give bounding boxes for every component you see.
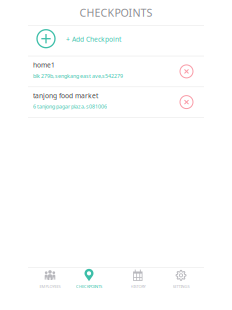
button[interactable]: EMPLOYEES bbox=[28, 268, 72, 290]
staticText: SETTINGS bbox=[172, 284, 189, 289]
staticText: home1 bbox=[33, 60, 55, 69]
staticText: EMPLOYEES bbox=[39, 284, 60, 289]
button[interactable]: home1 bbox=[28, 56, 204, 86]
staticText: tanjong food market bbox=[33, 91, 98, 100]
staticText: 6 tanjong pagar plaza, s081006 bbox=[33, 103, 107, 110]
button[interactable]: HISTORY bbox=[116, 268, 160, 290]
staticText: blk 279b, sengkang east ave,s542279 bbox=[33, 72, 123, 79]
button[interactable]: SETTINGS bbox=[159, 268, 203, 290]
button[interactable]: tanjong food market bbox=[28, 87, 204, 117]
staticText: CHECKPOINTS bbox=[79, 5, 152, 20]
button[interactable]: + Add Checkpoint bbox=[28, 26, 204, 56]
button[interactable]: CHECKPOINTS bbox=[67, 268, 111, 290]
staticText: CHECKPOINTS bbox=[76, 284, 102, 289]
staticText: HISTORY bbox=[130, 284, 145, 289]
staticText: + Add Checkpoint bbox=[66, 35, 121, 44]
